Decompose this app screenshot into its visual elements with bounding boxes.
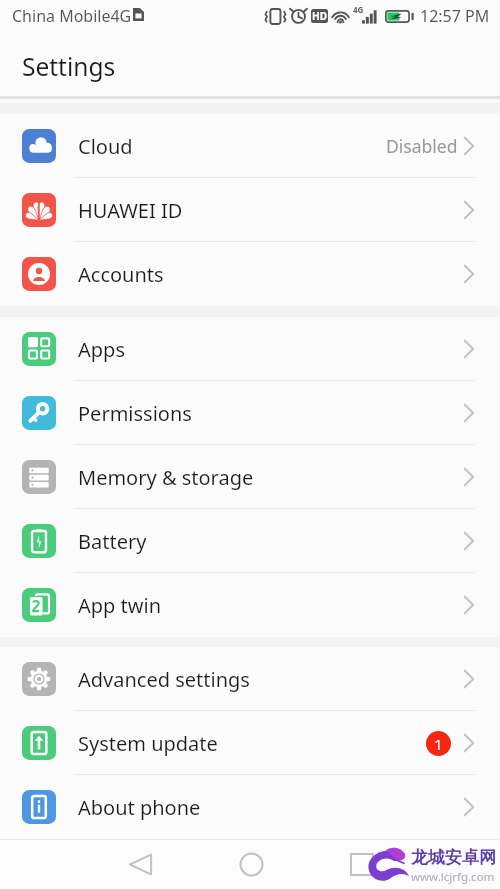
staticText: Apps (78, 336, 125, 363)
staticText: Battery (78, 528, 147, 555)
staticText: Memory & storage (78, 464, 254, 491)
button[interactable]: Memory & storage (0, 445, 500, 509)
button[interactable]: Apps (0, 317, 500, 381)
staticText: 1 (434, 734, 443, 754)
button[interactable]: Cloud (0, 114, 500, 178)
staticText: Cloud (78, 133, 133, 160)
staticText: HUAWEI ID (78, 197, 183, 224)
button[interactable]: Battery (0, 509, 500, 573)
staticText: System update (78, 730, 218, 757)
staticText: Settings (22, 50, 116, 83)
button[interactable]: Permissions (0, 381, 500, 445)
staticText: 12:57 PM (420, 5, 490, 27)
button[interactable]: Recent apps (335, 839, 387, 889)
staticText: Disabled (386, 134, 458, 158)
button[interactable]: App twin (0, 573, 500, 637)
staticText: Advanced settings (78, 666, 250, 693)
button[interactable]: Home (225, 839, 277, 889)
button[interactable]: Back (114, 839, 166, 889)
staticText: China Mobile4G (12, 5, 132, 27)
staticText: App twin (78, 592, 162, 619)
staticText: 龙城安卓网 (411, 847, 496, 868)
button[interactable]: HUAWEI ID (0, 178, 500, 242)
button[interactable]: Advanced settings (0, 647, 500, 711)
button[interactable]: System update (0, 711, 500, 775)
staticText: www.lcjrfg.com (411, 869, 495, 885)
button[interactable]: Accounts (0, 242, 500, 306)
staticText: Permissions (78, 400, 192, 427)
staticText: Accounts (78, 261, 164, 288)
button[interactable]: About phone (0, 775, 500, 839)
staticText: 4G (353, 4, 364, 15)
staticText: About phone (78, 794, 201, 821)
staticText: HD (312, 9, 327, 23)
